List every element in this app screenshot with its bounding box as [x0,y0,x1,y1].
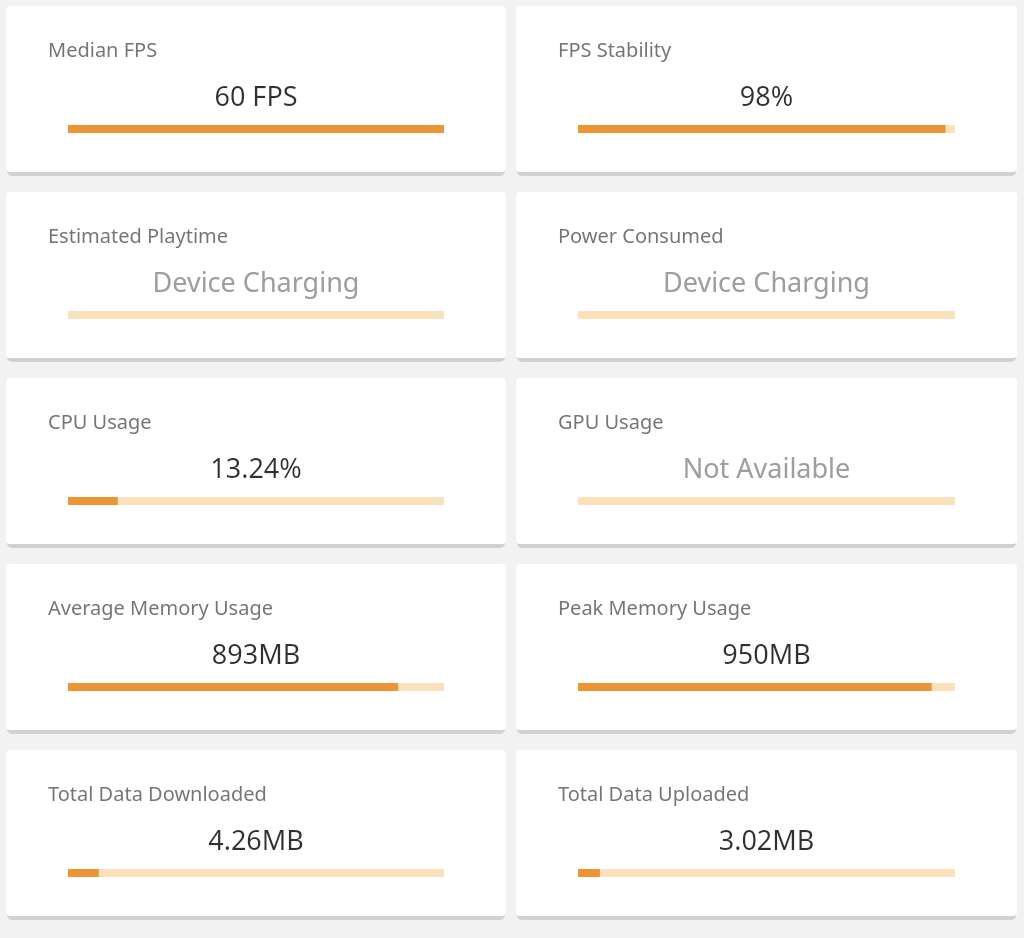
button[interactable]: Median FPS [6,6,506,172]
button[interactable]: GPU Usage [516,378,1017,544]
other: Performance statistics [0,0,1024,938]
staticText: 60 FPS [24,77,488,114]
staticText: Estimated Playtime [48,222,229,249]
staticText: FPS Stability [558,36,672,63]
staticText: Power Consumed [558,222,724,249]
staticText: 3.02MB [534,821,999,858]
button[interactable]: Average Memory Usage [6,564,506,730]
staticText: 893MB [24,635,488,672]
staticText: 98% [534,77,999,114]
staticText: Median FPS [48,36,158,63]
staticText: Average Memory Usage [48,594,273,621]
staticText: Total Data Uploaded [558,780,750,807]
button[interactable]: Peak Memory Usage [516,564,1017,730]
staticText: 4.26MB [24,821,488,858]
staticText: 950MB [534,635,999,672]
button[interactable]: Estimated Playtime [6,192,506,358]
staticText: Not Available [534,449,999,486]
staticText: Device Charging [24,263,488,300]
button[interactable]: CPU Usage [6,378,506,544]
staticText: Device Charging [534,263,999,300]
staticText: Peak Memory Usage [558,594,752,621]
button[interactable]: Power Consumed [516,192,1017,358]
staticText: Total Data Downloaded [48,780,267,807]
button[interactable]: Total Data Downloaded [6,750,506,916]
button[interactable]: FPS Stability [516,6,1017,172]
staticText: 13.24% [24,449,488,486]
staticText: GPU Usage [558,408,664,435]
button[interactable]: Total Data Uploaded [516,750,1017,916]
staticText: CPU Usage [48,408,152,435]
